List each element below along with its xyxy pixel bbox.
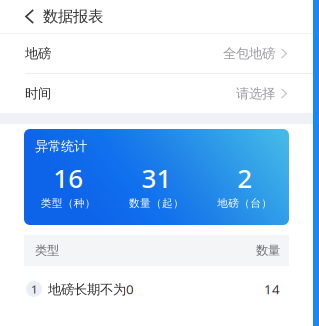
staticText: 请选择 — [236, 85, 275, 102]
staticText: 数量（起） — [129, 197, 184, 210]
staticText: 2 — [237, 160, 252, 195]
staticText: 16 — [53, 160, 83, 195]
staticText: 31 — [141, 160, 171, 195]
staticText: 地磅长期不为0 — [48, 280, 134, 298]
staticText: 类型（种） — [41, 197, 96, 210]
staticText: 时间 — [25, 85, 51, 102]
staticText: 14 — [264, 280, 280, 298]
staticText: 类型 — [35, 243, 59, 258]
button[interactable]: 地磅 — [0, 34, 313, 73]
staticText: 1 — [31, 281, 37, 297]
staticText: 全包地磅 — [223, 45, 275, 62]
button[interactable]: 时间 — [0, 74, 313, 113]
button[interactable]: 返回 — [0, 0, 35, 33]
staticText: 异常统计 — [35, 138, 87, 155]
staticText: 地磅（台） — [217, 197, 272, 210]
staticText: 地磅 — [25, 45, 51, 62]
button[interactable]: 1 — [24, 266, 289, 312]
staticText: 数量 — [256, 243, 280, 258]
staticText: 数据报表 — [43, 7, 103, 26]
